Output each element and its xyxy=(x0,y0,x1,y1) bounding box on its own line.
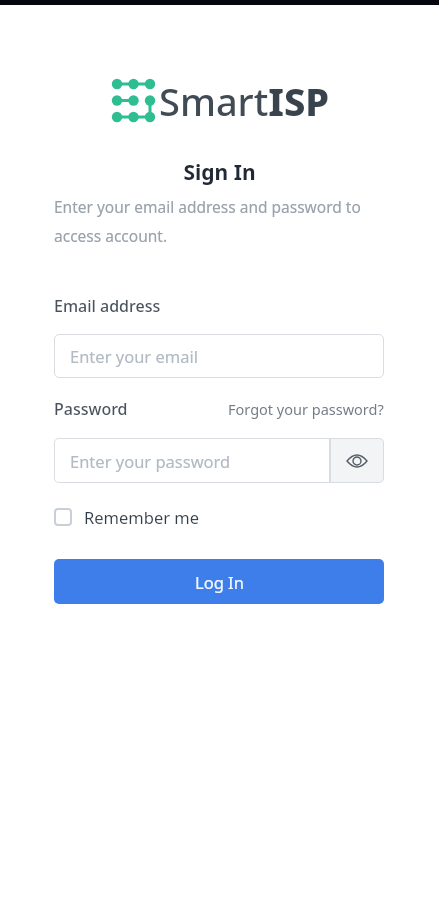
button[interactable]: Forgot your password? xyxy=(228,399,384,419)
staticText: Enter your email xyxy=(70,345,198,367)
button[interactable] xyxy=(54,508,72,526)
button[interactable]: Enter your email xyxy=(54,334,384,378)
staticText: SmartISP xyxy=(159,75,330,127)
staticText: Enter your email address and password to… xyxy=(54,196,361,246)
staticText: Sign In xyxy=(0,158,439,187)
staticText: Email address xyxy=(54,295,161,317)
staticText: Log In xyxy=(195,571,244,593)
staticText: Password xyxy=(54,398,128,420)
button[interactable]: Log In xyxy=(54,559,384,604)
button[interactable]: Enter your password xyxy=(54,438,330,483)
staticText: Enter your password xyxy=(70,450,231,472)
staticText: Remember me xyxy=(84,506,200,528)
button[interactable] xyxy=(330,438,384,483)
